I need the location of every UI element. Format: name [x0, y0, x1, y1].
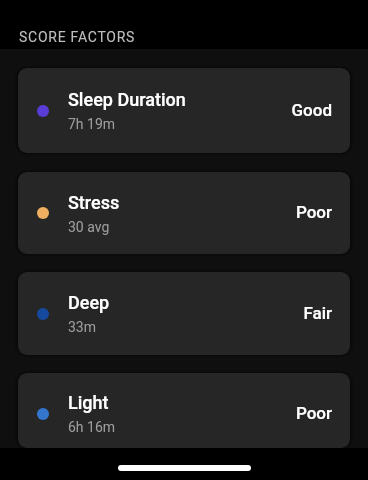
staticText: Fair	[303, 303, 332, 323]
button[interactable]: Light	[18, 373, 350, 448]
button[interactable]: Stress	[18, 172, 350, 254]
staticText: 7h 19m	[68, 116, 116, 132]
button[interactable]: Sleep Duration	[18, 68, 350, 153]
staticText: SCORE FACTORS	[19, 29, 136, 45]
button[interactable]: Deep	[18, 272, 350, 355]
staticText: Light	[68, 392, 109, 413]
staticText: Poor	[295, 403, 332, 423]
staticText: Sleep Duration	[68, 89, 186, 110]
staticText: Poor	[295, 202, 332, 222]
staticText: 6h 16m	[68, 419, 116, 435]
staticText: 30 avg	[68, 219, 110, 235]
staticText: Stress	[68, 192, 120, 213]
button[interactable]: Home	[118, 465, 251, 471]
staticText: Good	[291, 100, 332, 120]
staticText: 33m	[68, 319, 97, 335]
staticText: Deep	[68, 292, 110, 313]
